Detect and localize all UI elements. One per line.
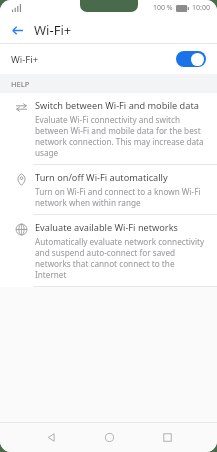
button[interactable]: Wi-Fi+: [0, 44, 217, 74]
staticText: Wi-Fi+: [11, 53, 39, 66]
button[interactable]: Evaluate available Wi-Fi networks: [0, 215, 217, 286]
staticText: Evaluate Wi-Fi connectivity and switch b…: [35, 114, 208, 158]
staticText: Automatically evaluate network connectiv…: [35, 236, 208, 280]
button[interactable]: Back: [6, 19, 28, 41]
staticText: HELP: [11, 79, 30, 89]
staticText: Switch between Wi-Fi and mobile data: [35, 99, 199, 112]
staticText: Wi-Fi+: [34, 21, 72, 39]
staticText: Evaluate available Wi-Fi networks: [35, 221, 178, 234]
staticText: 10:00: [192, 3, 210, 13]
button[interactable]: Back: [22, 422, 80, 452]
button[interactable]: Recent apps: [138, 422, 196, 452]
staticText: Turn on Wi-Fi and connect to a known Wi-…: [35, 186, 208, 208]
button[interactable]: Turn on/off Wi-Fi automatically: [0, 165, 217, 214]
staticText: 100 %: [153, 3, 173, 13]
button[interactable]: Home: [80, 422, 138, 452]
button[interactable]: Switch between Wi-Fi and mobile data: [0, 93, 217, 164]
staticText: Turn on/off Wi-Fi automatically: [35, 171, 168, 184]
